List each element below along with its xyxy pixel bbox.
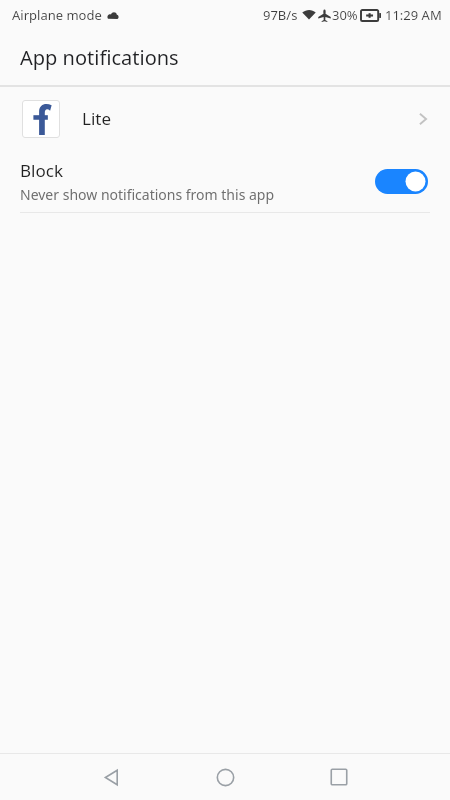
staticText: 11:29 AM	[385, 6, 442, 24]
staticText: Airplane mode	[12, 6, 102, 24]
staticText: Block	[20, 159, 63, 182]
staticText: Never show notifications from this app	[20, 185, 275, 204]
staticText: App notifications	[20, 44, 179, 71]
staticText: Lite	[82, 107, 112, 130]
staticText: 97B/s	[263, 6, 298, 24]
staticText: 30%	[332, 6, 358, 24]
button[interactable]: Block	[0, 150, 450, 212]
button[interactable]: Recent apps	[315, 754, 363, 800]
other: Open app info	[412, 108, 434, 130]
button[interactable]: Home	[201, 754, 249, 800]
button[interactable]: Lite	[0, 87, 450, 150]
button[interactable]: Back	[87, 754, 135, 800]
button[interactable]: Block notifications toggle	[375, 169, 428, 194]
